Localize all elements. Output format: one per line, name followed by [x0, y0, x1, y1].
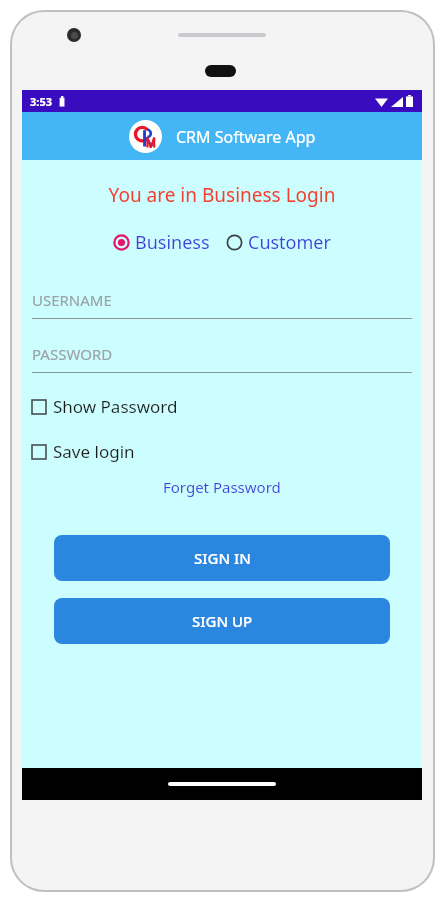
staticText: 3:53	[30, 94, 52, 109]
staticText: CRM Software App	[176, 126, 316, 148]
button[interactable]: SIGN UP	[54, 598, 390, 644]
button[interactable]: Show Password	[32, 395, 178, 418]
staticText: Forget Password	[163, 477, 281, 497]
staticText: SIGN UP	[192, 611, 253, 631]
staticText: Save login	[53, 440, 135, 463]
button[interactable]: Customer	[226, 230, 331, 255]
button[interactable]: USERNAME	[32, 287, 412, 319]
button[interactable]: Save login	[32, 440, 135, 463]
button[interactable]: Business	[113, 230, 210, 255]
staticText: You are in Business Login	[32, 182, 412, 208]
staticText: Show Password	[53, 395, 178, 418]
staticText: PASSWORD	[32, 344, 113, 364]
staticText: Customer	[248, 230, 331, 255]
button[interactable]: SIGN IN	[54, 535, 390, 581]
staticText: Business	[135, 230, 210, 255]
staticText: SIGN IN	[194, 548, 251, 568]
button[interactable]: PASSWORD	[32, 341, 412, 373]
button[interactable]: Forget Password	[32, 477, 412, 497]
staticText: USERNAME	[32, 290, 112, 310]
